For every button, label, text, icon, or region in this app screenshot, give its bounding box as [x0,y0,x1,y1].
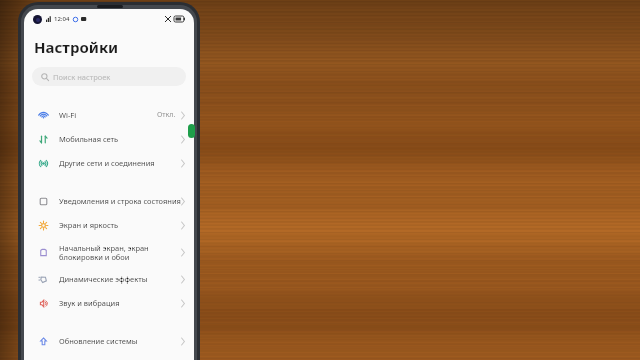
button[interactable]: Wi-Fi [24,103,194,127]
button[interactable]: Начальный экран, экран блокировки и обои [24,237,194,267]
button[interactable]: Мобильная сеть [24,127,194,151]
button[interactable]: Поиск настроек [32,67,186,86]
staticText: Мобильная сеть [59,134,181,144]
button[interactable]: Звук и вибрация [24,291,194,315]
button[interactable]: Другие сети и соединения [24,151,194,175]
staticText: Wi-Fi [59,110,157,120]
button[interactable]: Динамические эффекты [24,267,194,291]
button[interactable]: Обновление системы [24,329,194,353]
button[interactable]: Экран и яркость [24,213,194,237]
staticText: Начальный экран, экран блокировки и обои [59,243,181,262]
staticText: Откл. [157,110,176,120]
staticText: Звук и вибрация [59,298,181,308]
staticText: Поиск настроек [53,72,111,82]
button[interactable]: Уведомления и строка состояния [24,189,194,213]
staticText: Настройки [34,37,119,57]
staticText: Другие сети и соединения [59,158,181,168]
staticText: Экран и яркость [59,220,181,230]
staticText: 12:04 [54,15,70,23]
staticText: Уведомления и строка состояния [59,196,181,206]
staticText: Динамические эффекты [59,274,181,284]
staticText: Обновление системы [59,336,181,346]
